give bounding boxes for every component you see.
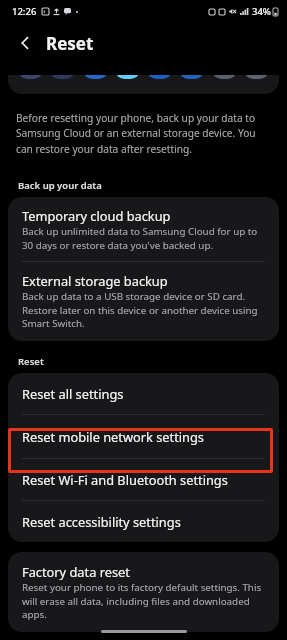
staticText: Before resetting your phone, back up you…: [16, 111, 273, 156]
button[interactable]: Reset all settings: [8, 373, 279, 414]
staticText: Back up unlimited data to Samsung Cloud …: [22, 225, 265, 251]
staticText: Reset accessibility settings: [22, 513, 181, 530]
staticText: Reset mobile network settings: [22, 428, 204, 445]
staticText: 12:26: [12, 5, 37, 18]
staticText: Reset Wi-Fi and Bluetooth settings: [22, 471, 228, 488]
staticText: Back up data to a USB storage device or …: [22, 290, 265, 329]
button[interactable]: External storage backup: [8, 262, 279, 341]
staticText: Temporary cloud backup: [22, 207, 171, 224]
button[interactable]: Factory data reset: [8, 552, 279, 632]
staticText: External storage backup: [22, 272, 168, 289]
staticText: Reset: [46, 32, 94, 55]
staticText: Factory data reset: [22, 563, 130, 580]
button[interactable]: Reset mobile network settings: [8, 415, 279, 458]
staticText: Reset your phone to its factory default …: [22, 581, 265, 620]
staticText: Reset all settings: [22, 385, 124, 402]
staticText: Back up your data: [18, 179, 102, 192]
staticText: 34%: [252, 5, 271, 18]
button[interactable]: Reset accessibility settings: [8, 501, 279, 542]
button[interactable]: Reset Wi-Fi and Bluetooth settings: [8, 459, 279, 500]
button[interactable]: Back: [10, 28, 40, 58]
staticText: Reset: [18, 355, 44, 368]
button[interactable]: Temporary cloud backup: [8, 197, 279, 261]
